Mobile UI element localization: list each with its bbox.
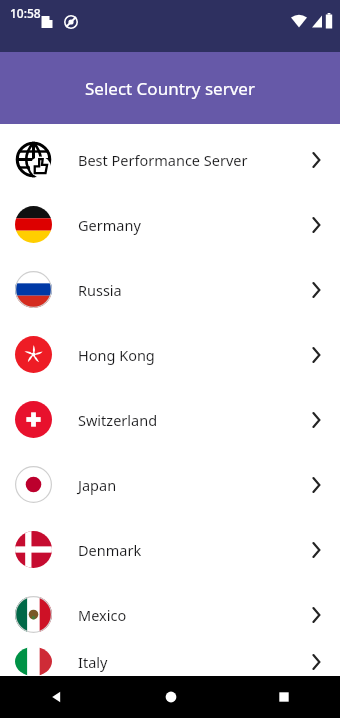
button[interactable]: Mexico [0,582,340,647]
staticText: Italy [78,652,306,672]
staticText: Select Country server [85,77,255,100]
staticText: 10:58 [10,5,41,21]
staticText: Japan [78,475,306,495]
staticText: Mexico [78,605,306,625]
staticText: Denmark [78,540,306,560]
button[interactable]: Italy [0,647,340,676]
button[interactable]: Russia [0,257,340,322]
button[interactable]: Best Performance Server [0,127,340,192]
staticText: Best Performance Server [78,150,306,170]
button[interactable]: Back [0,676,114,718]
button[interactable]: Switzerland [0,387,340,452]
staticText: Russia [78,280,306,300]
staticText: Hong Kong [78,345,306,365]
button[interactable]: Recent apps [227,676,340,718]
button[interactable]: Japan [0,452,340,517]
staticText: Germany [78,215,306,235]
button[interactable]: Home [114,676,227,718]
button[interactable]: Germany [0,192,340,257]
staticText: Switzerland [78,410,306,430]
button[interactable]: Denmark [0,517,340,582]
button[interactable]: Hong Kong [0,322,340,387]
